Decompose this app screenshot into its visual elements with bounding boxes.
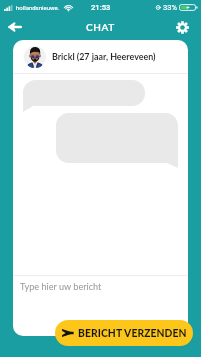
staticText: hollandsnieuwe. xyxy=(16,4,60,11)
button[interactable]: Back xyxy=(0,14,30,40)
button[interactable]: Brickl (27 jaar, Heereveen) xyxy=(13,40,188,73)
staticText: Brickl (27 jaar, Heereveen) xyxy=(52,51,156,62)
staticText: Type hier uw bericht xyxy=(20,281,102,292)
button[interactable]: Settings xyxy=(164,14,201,40)
staticText: 33% xyxy=(163,3,178,12)
staticText: CHAT xyxy=(86,21,115,33)
button[interactable]: Type hier uw bericht xyxy=(13,276,188,336)
staticText: BERICHT VERZENDEN xyxy=(78,327,187,339)
button[interactable]: BERICHT VERZENDEN xyxy=(55,320,193,346)
staticText: 21:53 xyxy=(91,3,111,12)
